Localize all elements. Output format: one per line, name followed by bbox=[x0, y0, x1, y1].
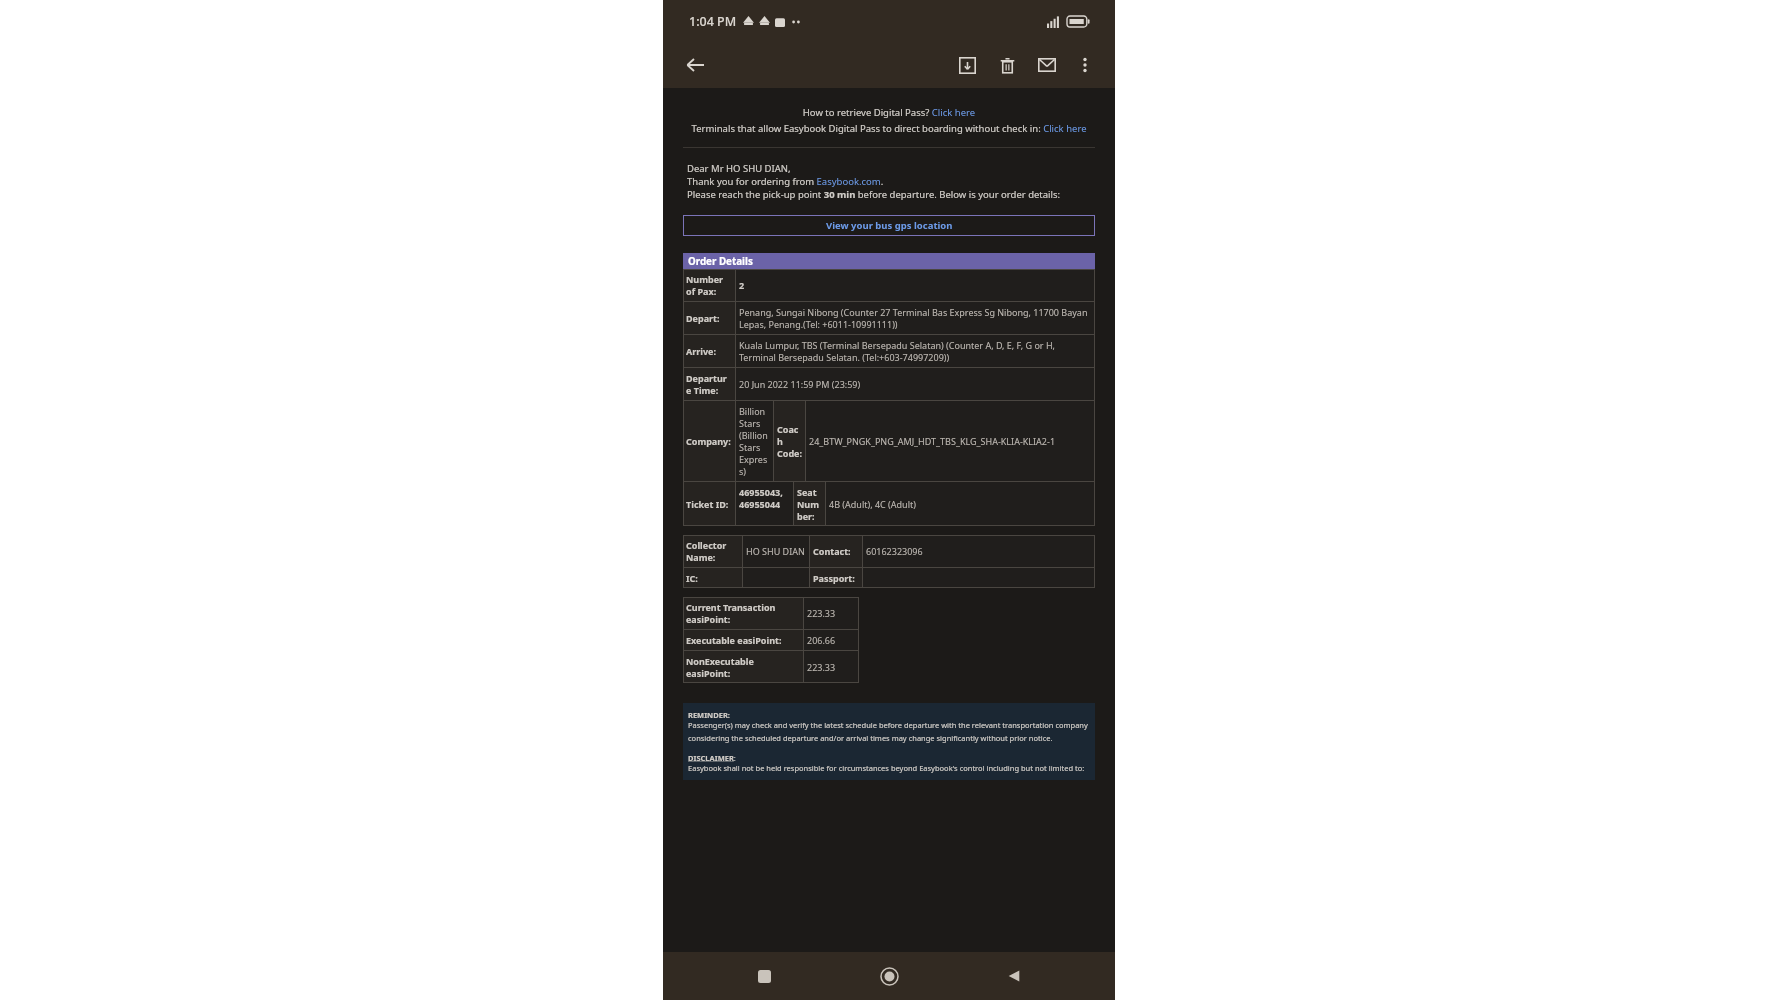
staticText: Current Transaction easiPoint: bbox=[686, 601, 800, 625]
staticText: Number of Pax: bbox=[686, 273, 732, 297]
staticText: Collector Name: bbox=[686, 539, 739, 563]
staticText: IC: bbox=[686, 572, 698, 584]
staticText: Ticket ID: bbox=[686, 498, 729, 510]
button[interactable]: More options bbox=[1067, 47, 1103, 83]
staticText: Passenger(s) may check and verify the la… bbox=[688, 720, 1090, 743]
staticText: 206.66 bbox=[807, 634, 836, 646]
staticText: 1:04 PM bbox=[689, 13, 737, 30]
staticText: NonExecutable easiPoint: bbox=[686, 655, 800, 679]
staticText: How to retrieve Digital Pass? Click here bbox=[683, 106, 1095, 119]
staticText: Arrive: bbox=[686, 345, 717, 357]
staticText: Contact: bbox=[813, 545, 851, 557]
staticText: View your bus gps location bbox=[826, 219, 953, 232]
staticText: 20 Jun 2022 11:59 PM (23:59) bbox=[739, 378, 861, 390]
staticText: Dear Mr HO SHU DIAN, bbox=[687, 162, 791, 175]
button[interactable]: Mark as unread bbox=[1027, 45, 1067, 85]
button[interactable]: Back bbox=[990, 952, 1038, 1000]
staticText: Penang, Sungai Nibong (Counter 27 Termin… bbox=[739, 306, 1092, 330]
staticText: Terminals that allow Easybook Digital Pa… bbox=[683, 122, 1095, 135]
staticText: 4B (Adult), 4C (Adult) bbox=[829, 498, 916, 510]
staticText: 223.33 bbox=[807, 661, 836, 673]
button[interactable]: Archive bbox=[947, 45, 987, 85]
button[interactable]: Home bbox=[865, 952, 913, 1000]
staticText: Thank you for ordering from Easybook.com… bbox=[687, 175, 884, 188]
staticText: Departure Time: bbox=[686, 372, 732, 396]
staticText: Please reach the pick-up point 30 min be… bbox=[687, 188, 1061, 201]
staticText: Depart: bbox=[686, 312, 720, 324]
staticText: Executable easiPoint: bbox=[686, 634, 782, 646]
staticText: Passport: bbox=[813, 572, 855, 584]
staticText: HO SHU DIAN bbox=[746, 545, 805, 557]
staticText: DISCLAIMER: bbox=[688, 753, 736, 763]
staticText: Coach Code: bbox=[777, 423, 802, 459]
button[interactable]: View your bus gps location bbox=[683, 215, 1095, 236]
staticText: REMINDER: bbox=[688, 710, 730, 720]
staticText: Kuala Lumpur, TBS (Terminal Bersepadu Se… bbox=[739, 339, 1092, 363]
staticText: Company: bbox=[686, 435, 731, 447]
staticText: 24_BTW_PNGK_PNG_AMJ_HDT_TBS_KLG_SHA-KLIA… bbox=[809, 435, 1056, 447]
staticText: Billion Stars (Billion Stars Express) bbox=[739, 405, 770, 477]
button[interactable]: Back bbox=[675, 45, 715, 85]
button[interactable]: Recent apps bbox=[740, 952, 788, 1000]
staticText: 223.33 bbox=[807, 607, 836, 619]
staticText: 2 bbox=[739, 279, 745, 291]
staticText: Easybook shall not be held responsible f… bbox=[688, 763, 1085, 773]
staticText: 46955043, 46955044 bbox=[739, 486, 790, 510]
staticText: Seat Number: bbox=[797, 486, 822, 522]
staticText: Order Details bbox=[688, 255, 753, 268]
button[interactable]: Delete bbox=[987, 45, 1027, 85]
staticText: 60162323096 bbox=[866, 545, 923, 557]
